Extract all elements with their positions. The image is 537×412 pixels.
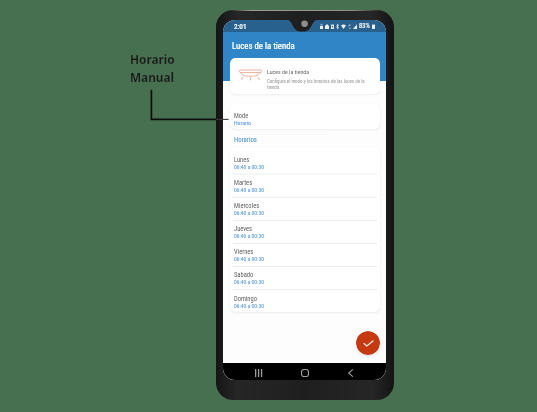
staticText: 06:40 a 00:30	[234, 187, 264, 194]
staticText: 06:40 a 00:30	[234, 279, 264, 286]
staticText: Jueves	[234, 225, 253, 233]
staticText: Luces de la tienda	[232, 41, 295, 51]
staticText: Configura el modo y los horarios de las …	[267, 78, 368, 90]
button[interactable]: Martes	[230, 174, 380, 197]
staticText: Martes	[234, 179, 253, 187]
button[interactable]: Sabado	[230, 266, 380, 289]
button[interactable]: Domingo	[230, 290, 380, 312]
staticText: Viernes	[234, 248, 254, 256]
button[interactable]: Home	[295, 364, 315, 380]
staticText: Manual	[130, 69, 175, 85]
button[interactable]: Confirmar	[356, 331, 380, 355]
staticText: Mode	[234, 112, 249, 120]
staticText: 06:40 a 00:30	[234, 303, 264, 310]
button[interactable]: Viernes	[230, 243, 380, 266]
staticText: Miercoles	[234, 202, 260, 210]
button[interactable]: Miercoles	[230, 197, 380, 220]
staticText: Domingo	[234, 295, 257, 303]
staticText: Horarios	[234, 136, 257, 144]
button[interactable]: Jueves	[230, 220, 380, 243]
button[interactable]: Recents	[249, 364, 269, 380]
button[interactable]: Back	[340, 364, 360, 380]
staticText: 06:40 a 00:30	[234, 256, 264, 263]
button[interactable]: Luces de la tienda	[230, 58, 380, 94]
staticText: Horario	[234, 120, 251, 127]
staticText: Lunes	[234, 156, 250, 164]
staticText: 06:40 a 00:30	[234, 210, 264, 217]
staticText: 06:40 a 00:30	[234, 164, 264, 171]
staticText: Sabado	[234, 271, 254, 279]
button[interactable]: Lunes	[230, 151, 380, 174]
staticText: 06:40 a 00:30	[234, 233, 264, 240]
staticText: Luces de la tienda	[267, 69, 310, 76]
staticText: 83%	[359, 22, 370, 30]
staticText: Horario	[130, 51, 175, 67]
staticText: 2:01	[234, 22, 247, 31]
button[interactable]: Mode	[230, 104, 380, 129]
